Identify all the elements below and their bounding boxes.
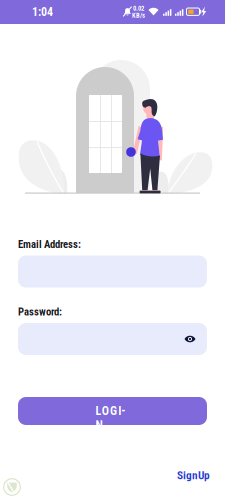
staticText: Password: (18, 305, 62, 318)
staticText: 0.02 (133, 5, 144, 12)
button[interactable]: LOGIN (18, 397, 207, 425)
staticText: SignUp (177, 469, 210, 482)
button[interactable]: SignUp (177, 466, 225, 485)
staticText: Email Address: (18, 238, 81, 250)
staticText: LOGIN (96, 404, 129, 418)
staticText: 1:04 (32, 5, 53, 19)
button[interactable]: Show password (184, 334, 207, 344)
staticText: KB/s (132, 11, 145, 19)
